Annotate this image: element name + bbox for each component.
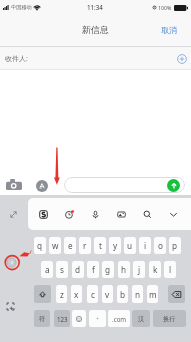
staticText: f xyxy=(92,264,95,275)
staticText: c xyxy=(91,289,95,300)
staticText: u xyxy=(127,240,133,251)
button[interactable] xyxy=(64,177,185,193)
button[interactable]: 123 xyxy=(54,310,70,327)
button[interactable]: r xyxy=(79,237,91,254)
button[interactable]: m xyxy=(147,285,158,303)
button[interactable]: p xyxy=(169,237,181,254)
button[interactable]: f xyxy=(87,261,99,278)
button[interactable]: Search xyxy=(142,209,153,220)
staticText: m xyxy=(149,289,157,300)
button[interactable]: c xyxy=(87,285,98,303)
staticText: b xyxy=(120,289,126,300)
button[interactable]: .com xyxy=(108,310,130,327)
staticText: i xyxy=(144,240,147,251)
staticText: h xyxy=(121,264,127,275)
staticText: q xyxy=(37,240,43,251)
button[interactable]: z xyxy=(56,285,67,303)
button[interactable]: h xyxy=(118,261,130,278)
staticText: v xyxy=(105,289,110,300)
button[interactable]: n xyxy=(132,285,143,303)
staticText: r xyxy=(83,240,87,251)
button[interactable]: Camera xyxy=(6,179,22,190)
button[interactable]: Stickers xyxy=(116,209,127,220)
button[interactable]: g xyxy=(102,261,114,278)
button[interactable]: t xyxy=(94,237,106,254)
button[interactable]: l xyxy=(164,261,176,278)
button[interactable]: Add contact xyxy=(177,54,187,64)
staticText: n xyxy=(135,289,141,300)
button[interactable]: Space xyxy=(89,310,106,327)
staticText: 123 xyxy=(57,315,68,323)
staticText: a xyxy=(45,264,50,275)
staticText: 汉 xyxy=(138,315,145,323)
staticText: d xyxy=(75,264,81,275)
button[interactable]: b xyxy=(117,285,128,303)
staticText: 100% xyxy=(158,4,172,11)
staticText: z xyxy=(60,289,64,300)
button[interactable]: u xyxy=(124,237,136,254)
button[interactable]: 汉 xyxy=(132,310,150,327)
staticText: j xyxy=(138,264,141,275)
button[interactable]: Backspace xyxy=(168,285,185,303)
staticText: k xyxy=(153,264,158,275)
button[interactable]: q xyxy=(34,237,46,254)
staticText: 中国移动 xyxy=(11,4,32,11)
button[interactable]: App Store xyxy=(36,180,48,192)
button[interactable]: s xyxy=(56,261,68,278)
button[interactable]: Sogou input xyxy=(38,209,49,220)
staticText: 换行 xyxy=(163,315,176,323)
button[interactable]: Resize keyboard xyxy=(9,210,18,219)
staticText: g xyxy=(105,264,111,275)
staticText: t xyxy=(99,240,102,251)
staticText: y xyxy=(113,240,118,251)
staticText: .com xyxy=(112,315,127,323)
staticText: e xyxy=(68,240,73,251)
button[interactable]: 符 xyxy=(34,310,50,327)
button[interactable]: 取消 xyxy=(147,19,191,41)
button[interactable]: a xyxy=(41,261,53,278)
staticText: l xyxy=(169,264,172,275)
staticText: s xyxy=(60,264,64,275)
button[interactable]: j xyxy=(133,261,145,278)
button[interactable]: Switch keyboard side xyxy=(7,258,16,267)
staticText: 11:34 xyxy=(87,3,103,11)
staticText: x xyxy=(74,289,79,300)
button[interactable]: e xyxy=(64,237,76,254)
button[interactable]: Move keyboard xyxy=(6,302,15,311)
staticText: 符 xyxy=(39,315,46,323)
button[interactable]: i xyxy=(139,237,151,254)
staticText: w xyxy=(52,240,59,251)
button[interactable]: o xyxy=(154,237,166,254)
button[interactable]: w xyxy=(49,237,61,254)
button[interactable]: k xyxy=(149,261,161,278)
staticText: 收件人: xyxy=(5,54,28,64)
button[interactable]: Hide keyboard xyxy=(168,209,179,220)
button[interactable]: v xyxy=(102,285,113,303)
button[interactable]: Recent xyxy=(64,209,75,220)
button[interactable]: Shift xyxy=(34,285,51,303)
button[interactable]: x xyxy=(71,285,82,303)
button[interactable]: Emoji xyxy=(72,310,86,327)
button[interactable]: 换行 xyxy=(153,310,186,327)
button[interactable]: Voice input xyxy=(90,209,101,220)
button[interactable]: y xyxy=(109,237,121,254)
button[interactable]: d xyxy=(72,261,84,278)
staticText: o xyxy=(158,240,163,251)
staticText: p xyxy=(172,240,178,251)
staticText: 取消 xyxy=(161,25,177,35)
button[interactable]: Send xyxy=(167,179,180,192)
staticText: 新信息 xyxy=(82,24,109,35)
